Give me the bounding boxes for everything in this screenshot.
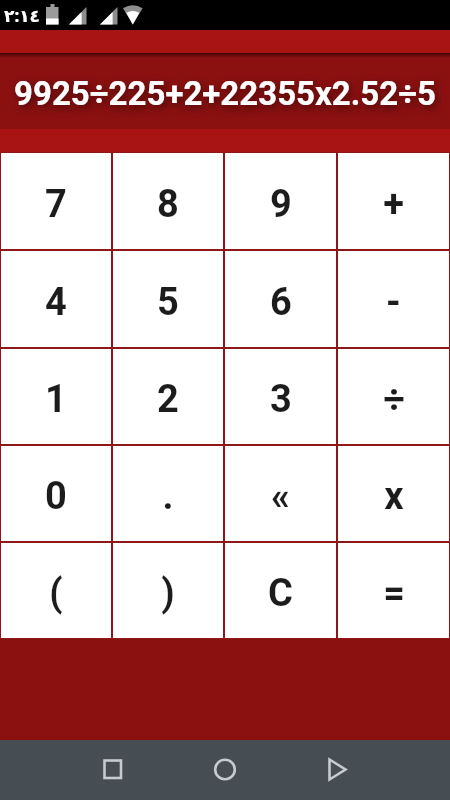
- staticText: 7: [45, 182, 67, 227]
- button[interactable]: «: [224, 445, 337, 542]
- staticText: -: [386, 280, 401, 325]
- staticText: 9925÷225+2+22355x2.52÷5: [14, 74, 436, 113]
- button[interactable]: (: [0, 542, 112, 639]
- staticText: 0: [45, 474, 67, 519]
- staticText: 3: [270, 377, 292, 422]
- button[interactable]: 6: [224, 250, 337, 348]
- staticText: +: [383, 182, 404, 227]
- button[interactable]: =: [337, 542, 450, 639]
- button[interactable]: -: [337, 250, 450, 348]
- staticText: «: [271, 474, 290, 519]
- staticText: x: [384, 474, 404, 519]
- staticText: 4: [45, 280, 67, 325]
- button[interactable]: .: [112, 445, 224, 542]
- button[interactable]: [323, 740, 383, 800]
- button[interactable]: [68, 740, 128, 800]
- staticText: 5: [157, 280, 179, 325]
- staticText: 1: [45, 377, 67, 422]
- button[interactable]: 7: [0, 152, 112, 250]
- staticText: =: [383, 571, 405, 616]
- button[interactable]: 8: [112, 152, 224, 250]
- staticText: C: [268, 571, 293, 616]
- staticText: 2: [157, 377, 179, 422]
- button[interactable]: 5: [112, 250, 224, 348]
- staticText: 6: [270, 280, 292, 325]
- button[interactable]: 0: [0, 445, 112, 542]
- staticText: (: [49, 571, 63, 616]
- staticText: 8: [157, 182, 179, 227]
- button[interactable]: 3: [224, 348, 337, 445]
- button[interactable]: [195, 740, 255, 800]
- button[interactable]: 4: [0, 250, 112, 348]
- button[interactable]: +: [337, 152, 450, 250]
- button[interactable]: C: [224, 542, 337, 639]
- staticText: ): [161, 571, 175, 616]
- button[interactable]: x: [337, 445, 450, 542]
- staticText: ٢:١٤: [4, 4, 40, 27]
- button[interactable]: 9: [224, 152, 337, 250]
- button[interactable]: 9925÷225+2+22355x2.52÷5: [0, 58, 450, 129]
- staticText: ÷: [383, 377, 405, 422]
- staticText: 9: [270, 182, 292, 227]
- button[interactable]: 1: [0, 348, 112, 445]
- button[interactable]: ÷: [337, 348, 450, 445]
- button[interactable]: 2: [112, 348, 224, 445]
- button[interactable]: ): [112, 542, 224, 639]
- staticText: .: [162, 474, 174, 519]
